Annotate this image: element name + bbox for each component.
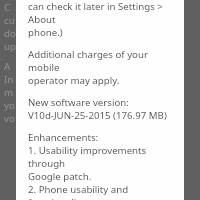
staticText: Enhancements: 1. Usability improvements … — [28, 131, 176, 200]
staticText: can check it later in Settings > About p… — [28, 0, 176, 39]
staticText: Additional notes — [4, 60, 16, 73]
staticText: download size — [4, 27, 16, 40]
staticText: updated now. — [4, 40, 16, 53]
staticText: may take some — [4, 86, 16, 99]
staticText: you should keep — [4, 99, 16, 112]
staticText: current version — [4, 14, 16, 27]
staticText: Check for new software — [4, 1, 16, 14]
staticText: Installing update — [4, 73, 16, 86]
staticText: New software version: V10d-JUN-25-2015 (… — [28, 96, 167, 122]
staticText: Additional charges of your mobile operat… — [28, 48, 176, 87]
staticText: voltage stable. — [4, 112, 16, 125]
